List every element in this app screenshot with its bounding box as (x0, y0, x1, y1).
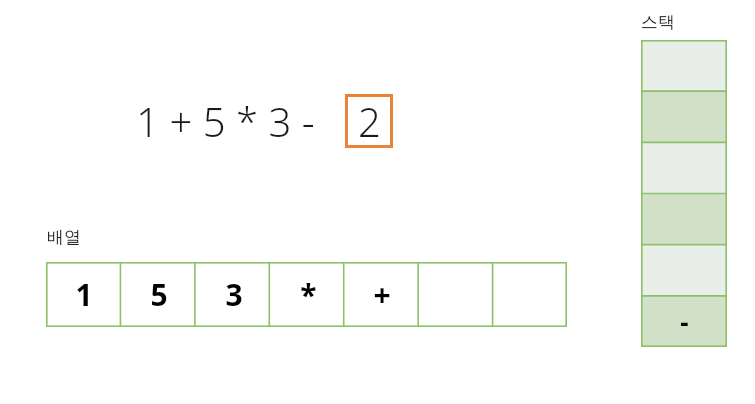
button[interactable] (493, 262, 567, 327)
button[interactable]: * (271, 262, 345, 327)
staticText: 스택 (641, 12, 675, 33)
staticText: 1 (75, 274, 93, 315)
button[interactable] (641, 40, 727, 92)
staticText: 2 (358, 94, 381, 148)
staticText: 1 + 5 * 3 - (131, 94, 320, 148)
staticText: + (373, 274, 391, 315)
button[interactable]: 1 (46, 262, 121, 327)
button[interactable]: - (641, 296, 727, 347)
staticText: * (300, 274, 317, 315)
button[interactable]: + (345, 262, 419, 327)
button[interactable]: 5 (121, 262, 196, 327)
staticText: 3 (225, 274, 243, 315)
button[interactable]: Current token 2 (345, 94, 393, 148)
button[interactable] (419, 262, 493, 327)
button[interactable] (641, 92, 727, 143)
button[interactable] (641, 194, 727, 245)
button[interactable]: 3 (196, 262, 271, 327)
staticText: 5 (150, 274, 168, 315)
button[interactable] (641, 245, 727, 296)
staticText: 배열 (47, 227, 81, 248)
staticText: - (680, 304, 689, 339)
button[interactable] (641, 143, 727, 194)
